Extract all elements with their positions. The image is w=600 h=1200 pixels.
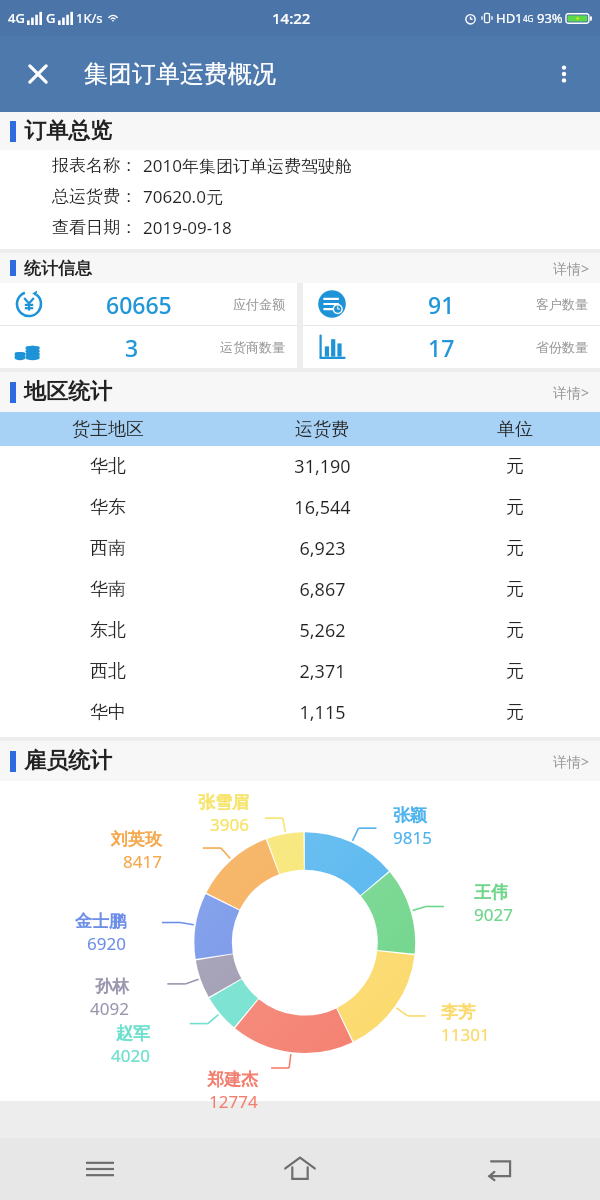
staticText: 运货商数量 <box>220 339 285 355</box>
staticText: 运货费 <box>295 418 349 441</box>
button[interactable]: 91 <box>303 283 600 325</box>
staticText: 东北 <box>90 619 126 642</box>
staticText: 报表名称： <box>52 155 137 176</box>
button[interactable]: Home <box>200 1138 400 1200</box>
staticText: G <box>46 9 56 27</box>
staticText: 93% <box>537 9 563 27</box>
staticText: 张雪眉 <box>198 792 249 813</box>
button[interactable]: 详情> <box>553 752 590 771</box>
staticText: 60665 <box>106 289 172 320</box>
staticText: 3 <box>125 332 139 363</box>
button[interactable]: Recents <box>0 1138 200 1200</box>
staticText: 华北 <box>90 455 126 478</box>
button[interactable]: 详情> <box>553 383 590 402</box>
staticText: 4092 <box>90 997 129 1020</box>
staticText: 70620.0元 <box>143 185 223 208</box>
staticText: 2,371 <box>299 659 346 684</box>
staticText: 2010年集团订单运费驾驶舱 <box>143 154 352 177</box>
button[interactable]: 西南 <box>0 528 600 569</box>
staticText: 华南 <box>90 578 126 601</box>
button[interactable]: 17 <box>303 326 600 368</box>
staticText: 应付金额 <box>233 296 285 312</box>
staticText: 省份数量 <box>536 339 588 355</box>
staticText: 2019-09-18 <box>143 216 232 239</box>
button[interactable]: 西北 <box>0 651 600 692</box>
button[interactable]: 60665 <box>0 283 297 325</box>
staticText: 元 <box>506 660 524 683</box>
staticText: 17 <box>428 332 455 363</box>
staticText: 金士鹏 <box>75 911 126 932</box>
staticText: 6,923 <box>299 536 346 561</box>
staticText: 1K/s <box>76 9 103 27</box>
staticText: 元 <box>506 496 524 519</box>
staticText: 元 <box>506 537 524 560</box>
button[interactable]: 详情> <box>553 259 590 278</box>
button[interactable]: 华南 <box>0 569 600 610</box>
staticText: 西北 <box>90 660 126 683</box>
staticText: 9027 <box>474 903 513 926</box>
staticText: 单位 <box>497 418 533 441</box>
button[interactable]: 3 <box>0 326 297 368</box>
button[interactable]: Back <box>400 1138 600 1200</box>
staticText: 4020 <box>111 1044 150 1067</box>
button[interactable]: Close <box>14 50 62 98</box>
staticText: 地区统计 <box>24 378 112 406</box>
button[interactable]: 华中 <box>0 692 600 733</box>
staticText: 统计信息 <box>24 258 92 279</box>
staticText: 货主地区 <box>72 418 144 441</box>
staticText: 16,544 <box>294 495 351 520</box>
staticText: 9815 <box>393 826 432 849</box>
staticText: 查看日期： <box>52 217 137 238</box>
staticText: 3906 <box>210 813 249 836</box>
staticText: 6,867 <box>299 577 346 602</box>
staticText: 6920 <box>87 932 126 955</box>
staticText: 雇员统计 <box>24 747 112 775</box>
staticText: 孙林 <box>95 976 129 997</box>
staticText: 1,115 <box>299 700 346 725</box>
staticText: 详情> <box>553 259 590 278</box>
staticText: HD1 <box>496 9 523 27</box>
staticText: 王伟 <box>474 882 508 903</box>
staticText: 4G <box>8 9 25 27</box>
staticText: 详情> <box>553 752 590 771</box>
staticText: 详情> <box>553 383 590 402</box>
staticText: 郑建杰 <box>207 1069 258 1090</box>
staticText: 91 <box>428 289 455 320</box>
staticText: 元 <box>506 619 524 642</box>
staticText: 元 <box>506 578 524 601</box>
staticText: 赵军 <box>116 1023 150 1044</box>
staticText: 8417 <box>123 850 162 873</box>
staticText: 总运货费： <box>52 186 137 207</box>
staticText: 华中 <box>90 701 126 724</box>
staticText: 元 <box>506 701 524 724</box>
button[interactable]: 华北 <box>0 446 600 487</box>
staticText: 集团订单运费概况 <box>84 59 276 89</box>
staticText: 4G <box>523 13 534 24</box>
staticText: 华东 <box>90 496 126 519</box>
button[interactable]: 东北 <box>0 610 600 651</box>
staticText: 西南 <box>90 537 126 560</box>
staticText: 14:22 <box>272 8 311 28</box>
staticText: 元 <box>506 455 524 478</box>
staticText: 刘英玫 <box>111 829 162 850</box>
staticText: 11301 <box>441 1023 490 1046</box>
staticText: 5,262 <box>299 618 346 643</box>
staticText: 31,190 <box>294 454 351 479</box>
staticText: 订单总览 <box>24 117 112 145</box>
button[interactable]: More options <box>540 50 588 98</box>
button[interactable]: 华东 <box>0 487 600 528</box>
staticText: 客户数量 <box>536 296 588 312</box>
staticText: 张颖 <box>393 805 427 826</box>
staticText: 李芳 <box>441 1002 475 1023</box>
staticText: 12774 <box>209 1090 258 1113</box>
